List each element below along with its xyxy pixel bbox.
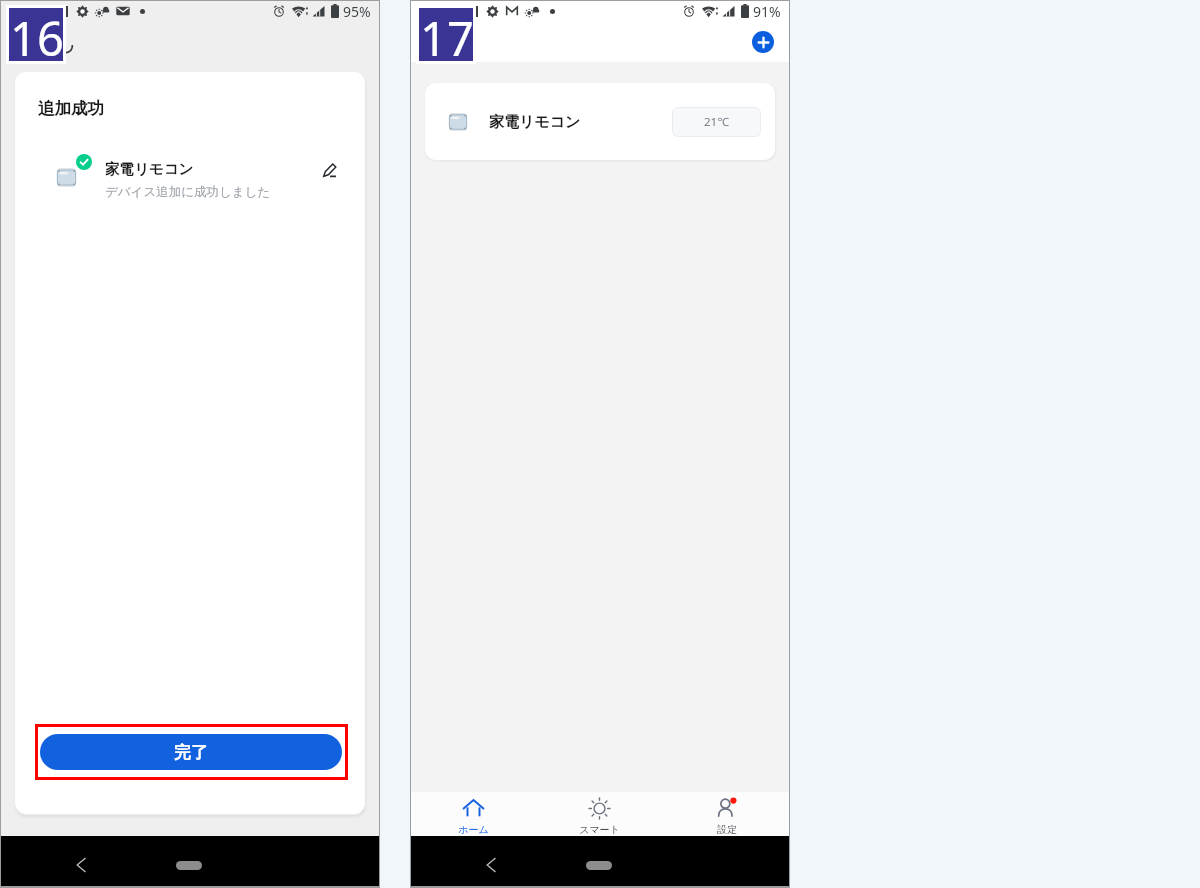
button[interactable]: Home xyxy=(586,861,612,870)
button[interactable]: 設定 xyxy=(663,792,790,836)
staticText: 91% xyxy=(753,2,781,21)
staticText: デバイス追加に成功しました xyxy=(105,184,271,200)
button[interactable]: Edit device name xyxy=(315,156,343,184)
button[interactable]: Back xyxy=(69,853,93,877)
button[interactable]: Add device xyxy=(752,31,774,53)
staticText: ホーム xyxy=(458,823,489,836)
staticText: 完了 xyxy=(174,742,208,763)
button[interactable]: Home xyxy=(176,861,202,870)
staticText: スマート xyxy=(579,823,620,836)
button[interactable]: Back xyxy=(479,853,503,877)
staticText: 設定 xyxy=(717,823,737,836)
staticText: 家電リモコン xyxy=(105,160,194,178)
staticText: 21℃ xyxy=(704,114,729,130)
staticText: 追加成功 xyxy=(38,98,104,119)
staticText: 家電リモコン xyxy=(489,113,581,132)
staticText: 16 xyxy=(10,6,64,65)
button[interactable]: スマート xyxy=(536,792,663,836)
staticText: 17 xyxy=(420,6,474,65)
staticText: 95% xyxy=(343,2,371,21)
button[interactable]: 家電リモコン xyxy=(15,158,365,198)
button[interactable]: 完了 xyxy=(40,734,342,770)
button[interactable]: 21℃ xyxy=(672,107,761,137)
button[interactable]: ホーム xyxy=(410,792,536,836)
button[interactable]: 家電リモコン xyxy=(425,83,775,160)
